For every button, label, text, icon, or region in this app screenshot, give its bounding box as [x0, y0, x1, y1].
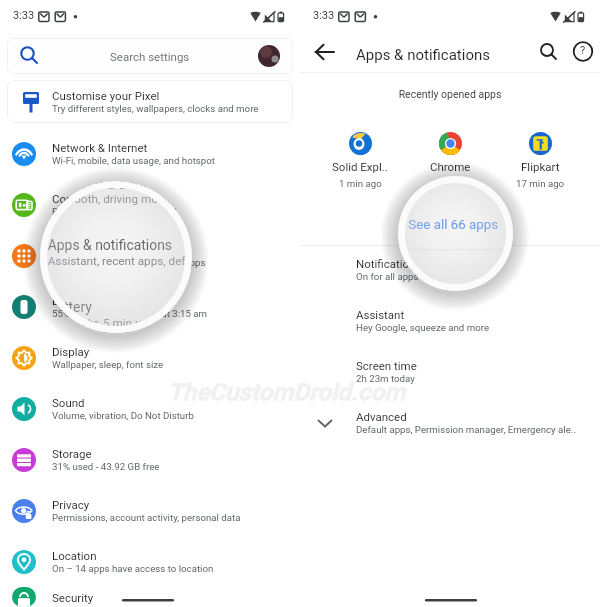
- staticText: On – 14 apps have access to location: [52, 563, 214, 574]
- button[interactable]: Solid Expl..: [328, 132, 392, 189]
- button[interactable]: Privacy: [0, 485, 300, 536]
- staticText: Sound: [52, 396, 85, 409]
- button[interactable]: Apps & notifications: [40, 221, 192, 283]
- staticText: Wallpaper, sleep, font size: [52, 359, 164, 370]
- button[interactable]: Advanced: [300, 397, 600, 448]
- staticText: Battery: [52, 294, 89, 307]
- staticText: Permissions, account activity, personal …: [52, 512, 241, 523]
- button[interactable]: Sound: [0, 383, 300, 434]
- button[interactable]: Screen time: [300, 346, 600, 397]
- staticText: Bluetooth, driving mode, NFC: [48, 192, 192, 206]
- button[interactable]: Location: [0, 536, 300, 587]
- staticText: Notifications: [356, 257, 422, 270]
- staticText: Assistant: [356, 308, 405, 321]
- staticText: Display: [52, 345, 90, 358]
- button[interactable]: Search: [536, 40, 562, 66]
- staticText: 55% - 3 hr, 5 min until about 3:15 am: [48, 316, 192, 329]
- button[interactable]: Chrome: [426, 176, 482, 184]
- staticText: Wi-Fi, mobile, data usage, and hotspot: [52, 155, 215, 166]
- button[interactable]: Connected devices: [0, 179, 300, 230]
- staticText: 2h 23m today: [356, 373, 415, 384]
- staticText: Connected devices: [52, 192, 149, 205]
- staticText: 55% - 3 hr, 5 min until about 3:15 am: [52, 308, 208, 319]
- staticText: Screen time: [356, 359, 417, 372]
- staticText: Customise your Pixel: [52, 89, 160, 102]
- staticText: On for all apps: [356, 271, 419, 282]
- button[interactable]: Notifications: [300, 244, 600, 295]
- button[interactable]: Back: [313, 41, 337, 65]
- staticText: 31% used - 43.92 GB free: [52, 461, 160, 472]
- button[interactable]: Account: [258, 45, 280, 67]
- button[interactable]: Apps & notifications: [0, 230, 300, 281]
- button[interactable]: Battery: [40, 283, 192, 333]
- staticText: Recently opened apps: [300, 88, 600, 100]
- button[interactable]: Connected devices: [40, 181, 192, 221]
- staticText: Flipkart: [521, 160, 560, 173]
- staticText: Apps & notifications: [48, 237, 172, 253]
- staticText: Security: [52, 591, 94, 604]
- staticText: Storage: [52, 447, 92, 460]
- button[interactable]: Security: [0, 587, 300, 607]
- staticText: 3:33: [313, 9, 335, 22]
- staticText: Try different styles, wallpapers, clocks…: [52, 103, 259, 114]
- button[interactable]: Help: [570, 40, 596, 66]
- staticText: Apps & notifications: [356, 46, 490, 64]
- staticText: 3:33: [13, 9, 35, 22]
- button[interactable]: Customise your Pixel: [7, 80, 293, 123]
- button[interactable]: Storage: [0, 434, 300, 485]
- button[interactable]: Search settings: [7, 38, 293, 74]
- staticText: ?: [580, 44, 586, 57]
- staticText: Connected devices: [48, 181, 165, 191]
- button[interactable]: Network & Internet: [0, 128, 300, 179]
- staticText: Hey Google, squeeze and more: [356, 322, 490, 333]
- staticText: Bluetooth, driving mode, NFC: [52, 206, 177, 217]
- staticText: Search settings: [110, 50, 190, 63]
- staticText: Default apps, Permission manager, Emerge…: [356, 424, 576, 435]
- staticText: 17 min ago: [516, 178, 565, 189]
- staticText: See all 66 apps: [408, 217, 499, 232]
- staticText: Volume, vibration, Do Not Disturb: [52, 410, 194, 421]
- staticText: Battery: [48, 299, 92, 314]
- staticText: Assistant, recent apps, default apps: [52, 257, 206, 268]
- staticText: Assistant, recent apps, default apps: [48, 254, 192, 267]
- staticText: Network & Internet: [52, 141, 148, 154]
- staticText: [452, 176, 456, 184]
- button[interactable]: See all 66 apps: [398, 214, 513, 233]
- staticText: Chrome: [430, 160, 471, 173]
- button[interactable]: Chrome: [426, 132, 475, 189]
- staticText: 1 min ago: [339, 178, 382, 189]
- staticText: TheCustomDroid.com: [168, 379, 406, 406]
- staticText: Solid Expl..: [332, 160, 388, 173]
- staticText: See all 66 apps: [411, 217, 489, 230]
- staticText: Location: [52, 549, 97, 562]
- staticText: Privacy: [52, 498, 90, 511]
- staticText: Notifications: [398, 263, 421, 278]
- button[interactable]: Display: [0, 332, 300, 383]
- staticText: Apps & notifications: [52, 243, 155, 256]
- staticText: On for all apps: [398, 279, 418, 291]
- button[interactable]: Battery: [0, 281, 300, 332]
- button[interactable]: Assistant: [300, 295, 600, 346]
- button[interactable]: Flipkart: [512, 132, 569, 189]
- button[interactable]: Notifications: [398, 248, 513, 291]
- staticText: [449, 178, 452, 189]
- staticText: Advanced: [356, 410, 407, 423]
- button[interactable]: See all 66 apps: [300, 215, 600, 231]
